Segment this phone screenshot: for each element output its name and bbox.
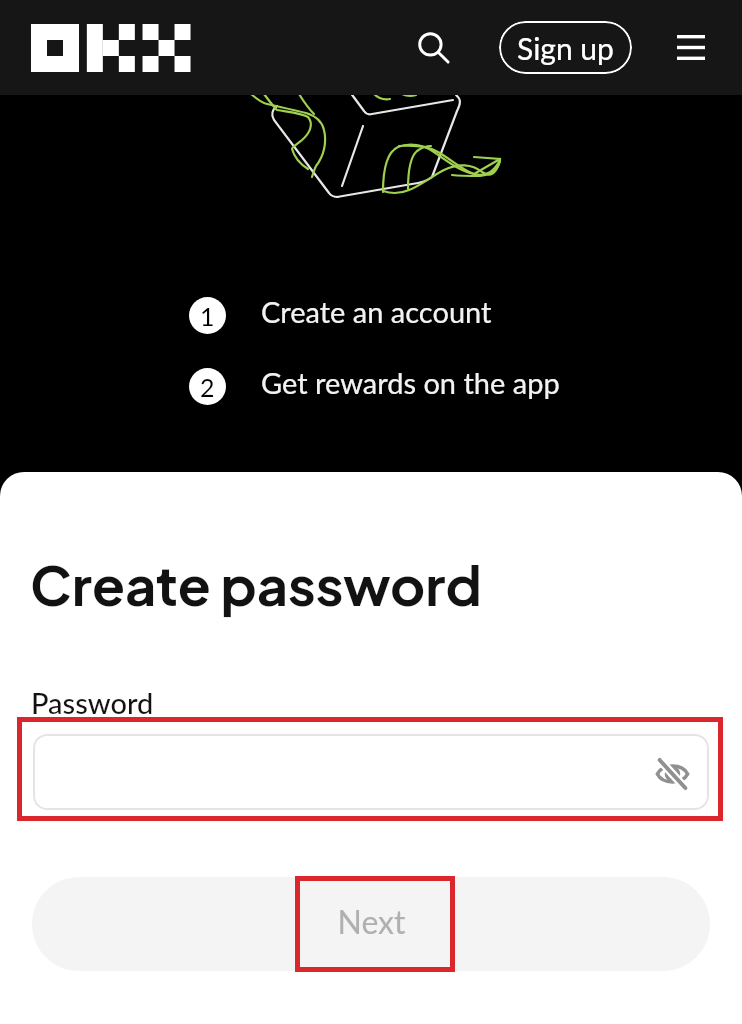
button[interactable]: OKX home <box>31 24 192 72</box>
button[interactable]: Show password <box>33 734 709 810</box>
button[interactable]: 1 <box>189 297 492 334</box>
staticText: Password <box>31 685 154 720</box>
staticText: Create password <box>30 550 482 618</box>
staticText: Sign up <box>517 30 614 66</box>
staticText: 1 <box>200 301 215 331</box>
button[interactable]: Menu <box>664 21 717 74</box>
button[interactable]: Next <box>32 877 710 971</box>
staticText: Create an account <box>261 294 492 329</box>
button[interactable]: Sign up <box>499 21 632 74</box>
button[interactable]: 2 <box>189 368 560 405</box>
button[interactable]: Show password <box>648 750 696 798</box>
button[interactable]: Search <box>407 21 460 74</box>
staticText: Next <box>337 902 406 940</box>
staticText: Get rewards on the app <box>261 365 560 400</box>
staticText: 2 <box>200 372 215 402</box>
